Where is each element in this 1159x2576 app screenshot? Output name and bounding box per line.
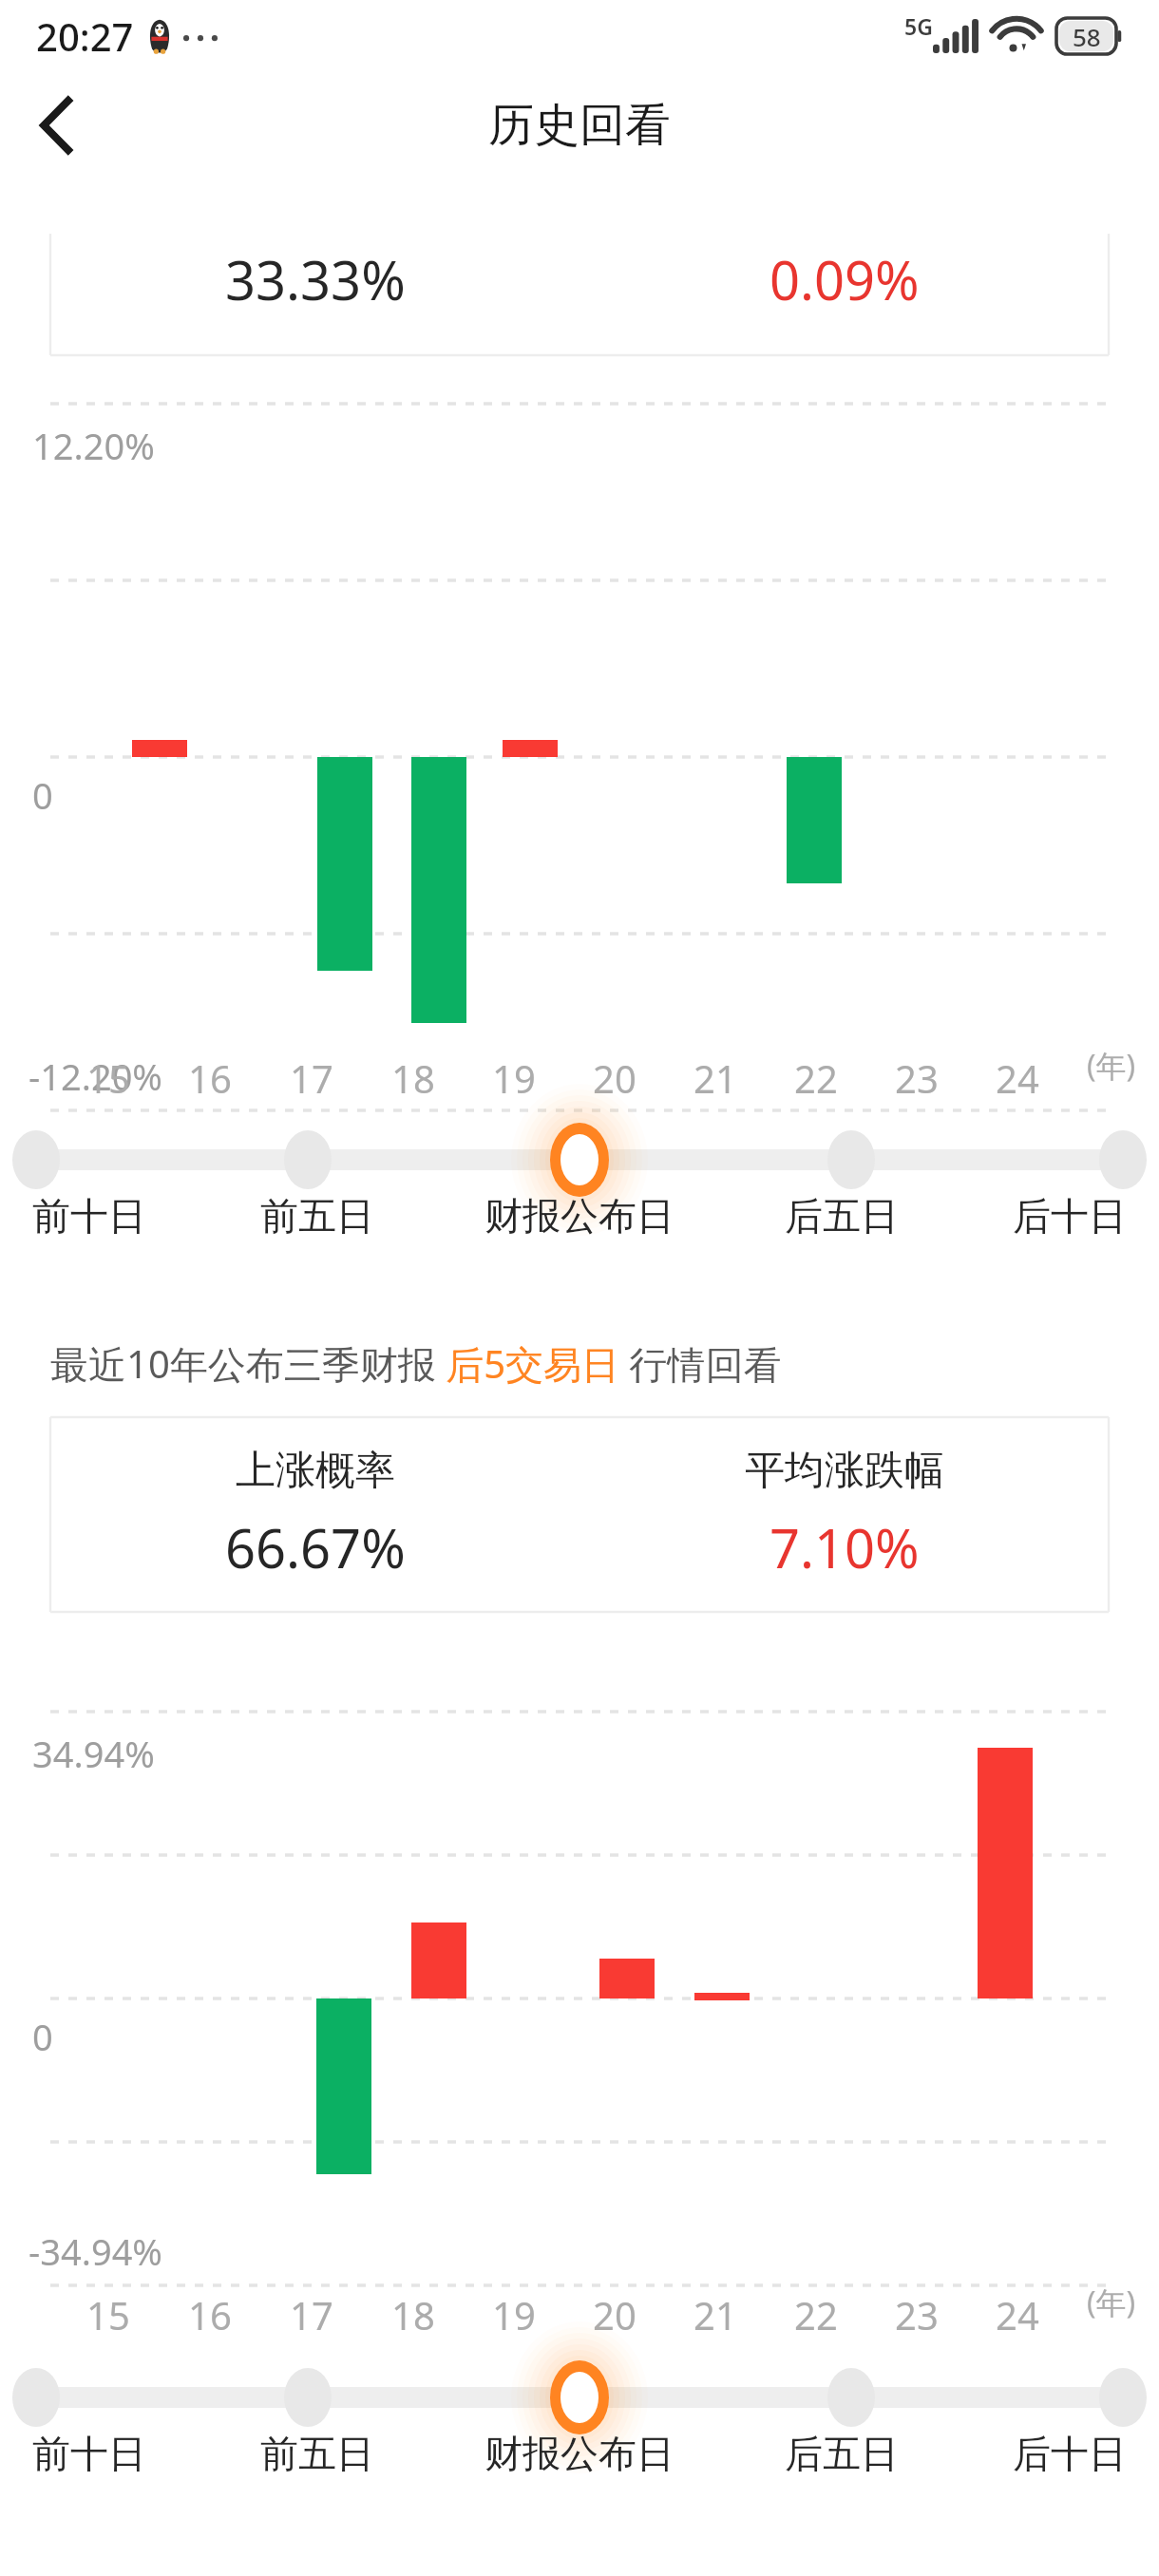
staticText: 7.10% — [769, 1511, 920, 1583]
staticText: 24 — [996, 2289, 1039, 2340]
staticText: -12.20% — [28, 1051, 162, 1101]
staticText: 20:27 — [36, 10, 134, 62]
staticText: 22 — [794, 1052, 838, 1104]
staticText: (年) — [1087, 2282, 1136, 2323]
staticText: 历史回看 — [488, 97, 671, 154]
staticText: 66.67% — [225, 1511, 406, 1583]
button[interactable]: Timeline slider — [0, 2354, 1159, 2441]
staticText: 20 — [593, 2289, 636, 2340]
staticText: 23 — [895, 2289, 939, 2340]
staticText: 最近10年公布三季财报 后5交易日 行情回看 — [50, 1337, 782, 1390]
staticText: (年) — [1087, 1045, 1136, 1087]
staticText: 33.33% — [225, 243, 406, 315]
staticText: 19 — [492, 1052, 536, 1104]
staticText: 前五日 — [260, 2430, 374, 2477]
staticText: 上涨概率 — [236, 1446, 395, 1496]
staticText: 5G — [904, 11, 933, 41]
button[interactable]: 上涨概率 — [50, 1417, 1109, 1612]
staticText: 前五日 — [260, 1192, 374, 1240]
staticText: 19 — [492, 2289, 536, 2340]
staticText: 15 — [86, 2289, 130, 2340]
staticText: 16 — [188, 1052, 232, 1104]
staticText: 财报公布日 — [484, 1192, 674, 1240]
staticText: 17 — [290, 1052, 333, 1104]
staticText: 18 — [391, 2289, 435, 2340]
staticText: 后五日 — [785, 2430, 899, 2477]
staticText: 23 — [895, 1052, 939, 1104]
staticText: 财报公布日 — [484, 2430, 674, 2477]
button[interactable]: Timeline slider — [0, 1116, 1159, 1203]
staticText: -34.94% — [28, 2226, 162, 2276]
staticText: 17 — [290, 2289, 333, 2340]
staticText: 22 — [794, 2289, 838, 2340]
staticText: 18 — [391, 1052, 435, 1104]
staticText: 0 — [32, 2012, 53, 2061]
staticText: 58 — [1073, 20, 1101, 53]
staticText: 后五日 — [785, 1192, 899, 1240]
staticText: 后十日 — [1013, 1192, 1127, 1240]
staticText: 15 — [86, 1052, 130, 1104]
staticText: 后十日 — [1013, 2430, 1127, 2477]
staticText: 16 — [188, 2289, 232, 2340]
staticText: 前十日 — [32, 1192, 146, 1240]
staticText: 12.20% — [32, 421, 155, 470]
staticText: 前十日 — [32, 2430, 146, 2477]
staticText: 0.09% — [769, 243, 920, 315]
button[interactable]: Back — [15, 85, 97, 166]
staticText: 20 — [593, 1052, 636, 1104]
staticText: 平均涨跌幅 — [745, 1446, 944, 1496]
button[interactable]: 33.33% — [50, 234, 1109, 355]
staticText: 0 — [32, 770, 53, 820]
staticText: 24 — [996, 1052, 1039, 1104]
staticText: 21 — [693, 2289, 737, 2340]
staticText: 21 — [693, 1052, 737, 1104]
staticText: 34.94% — [32, 1729, 155, 1778]
